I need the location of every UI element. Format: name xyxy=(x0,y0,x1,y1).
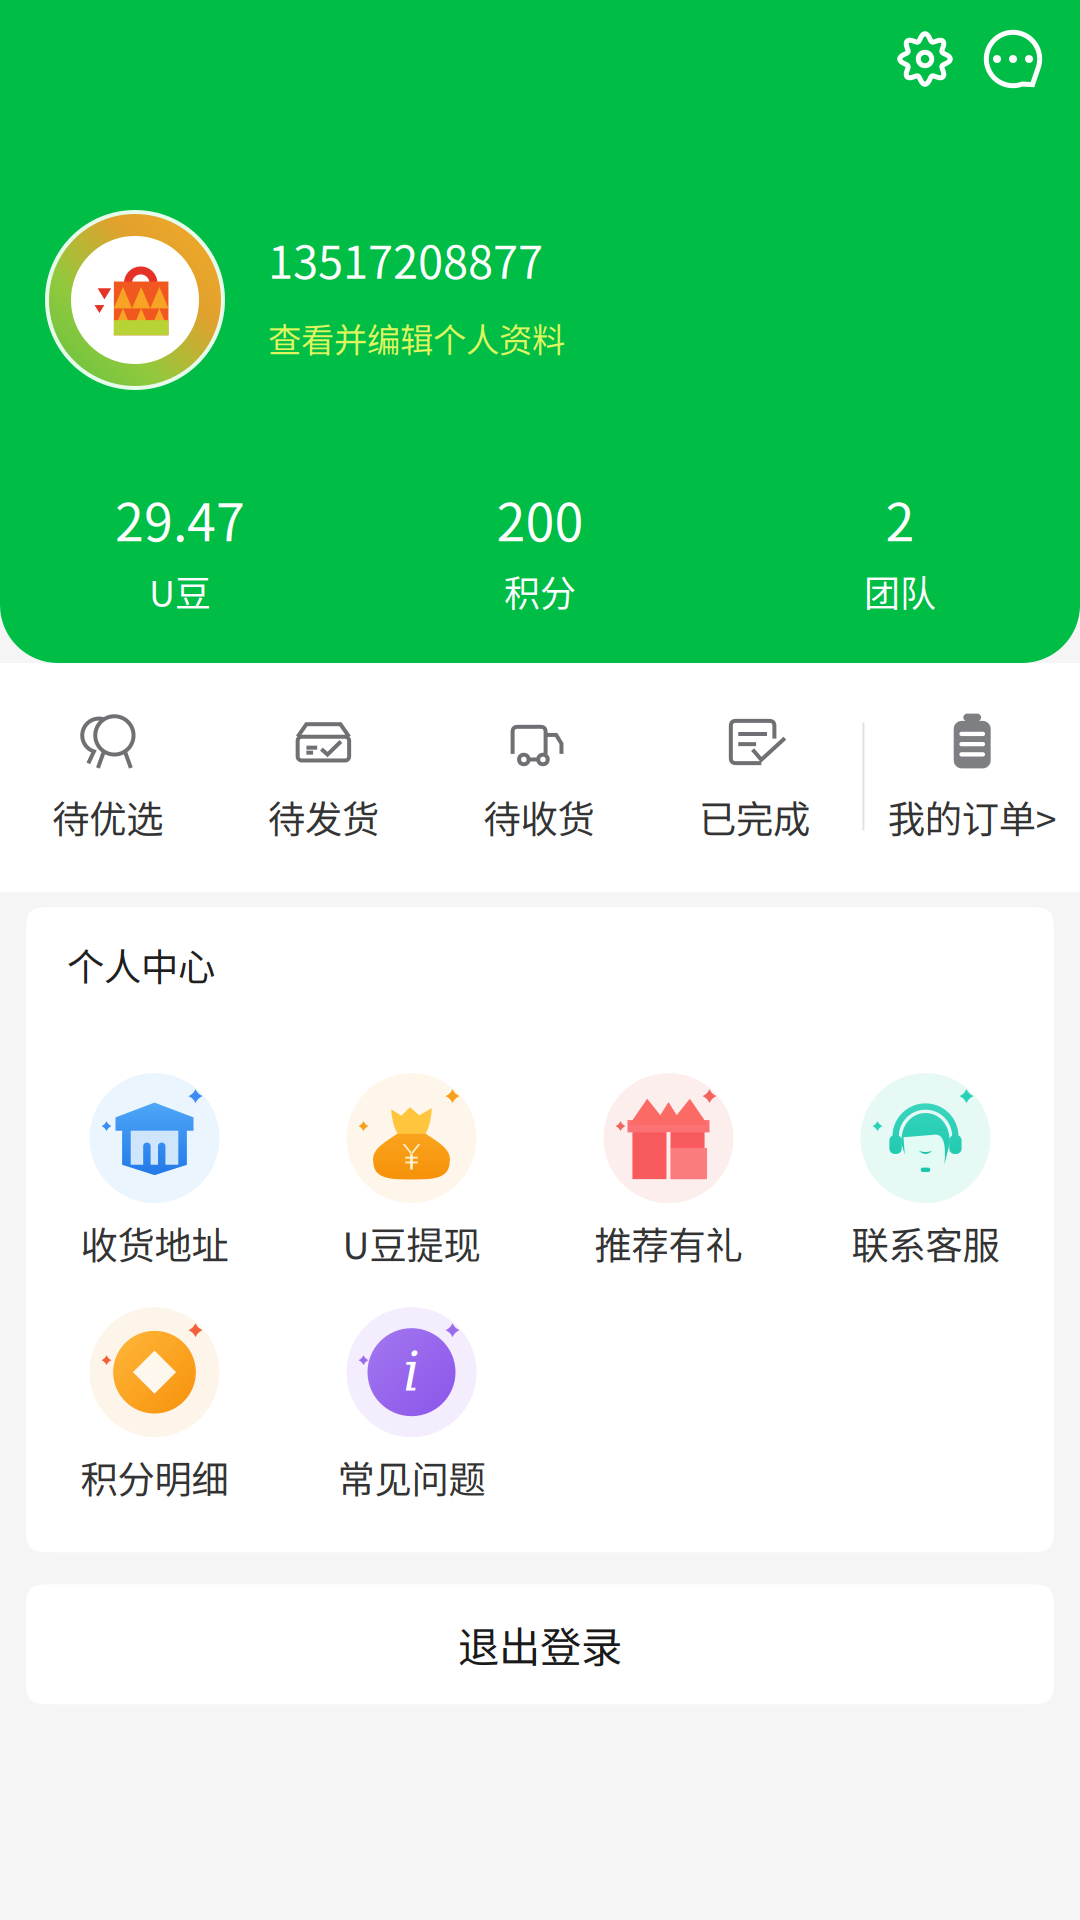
staticText: 收货地址 xyxy=(80,1216,228,1270)
staticText: 29.47 xyxy=(115,481,245,556)
staticText: 积分 xyxy=(504,565,576,617)
button[interactable]: 联系客服 xyxy=(797,1068,1054,1270)
staticText: U豆 xyxy=(149,565,211,617)
button[interactable]: 头像 xyxy=(43,208,227,392)
staticText: 联系客服 xyxy=(851,1216,999,1270)
staticText: i xyxy=(403,1341,420,1403)
button[interactable]: 我的订单> xyxy=(864,709,1080,844)
staticText: 查看并编辑个人资料 xyxy=(268,314,565,362)
staticText: 200 xyxy=(496,481,583,556)
button[interactable]: i xyxy=(283,1302,540,1504)
staticText: 待收货 xyxy=(483,790,594,844)
staticText: 积分明细 xyxy=(80,1450,228,1504)
staticText: 团队 xyxy=(864,565,936,617)
staticText: 个人中心 xyxy=(67,938,215,992)
staticText: 待优选 xyxy=(52,790,163,844)
staticText: U豆提现 xyxy=(342,1216,480,1270)
button[interactable]: 退出登录 xyxy=(26,1584,1054,1704)
staticText: 待发货 xyxy=(268,790,379,844)
button[interactable]: U豆提现 xyxy=(283,1068,540,1270)
button[interactable]: 29.47 xyxy=(0,481,360,617)
staticText: 2 xyxy=(885,481,914,556)
staticText: 我的订单> xyxy=(888,790,1057,844)
button[interactable]: 待收货 xyxy=(431,709,647,844)
button[interactable]: 推荐有礼 xyxy=(540,1068,797,1270)
button[interactable]: 更多 xyxy=(968,14,1058,104)
staticText: 已完成 xyxy=(699,790,810,844)
button[interactable]: 200 xyxy=(360,481,720,617)
staticText: 推荐有礼 xyxy=(594,1216,742,1270)
button[interactable]: 待优选 xyxy=(0,709,216,844)
button[interactable]: 收货地址 xyxy=(26,1068,283,1270)
staticText: 常见问题 xyxy=(337,1450,485,1504)
staticText: 13517208877 xyxy=(268,226,543,292)
button[interactable]: 2 xyxy=(720,481,1080,617)
button[interactable]: 积分明细 xyxy=(26,1302,283,1504)
staticText: 退出登录 xyxy=(458,1614,622,1674)
button[interactable]: 待发货 xyxy=(216,709,431,844)
button[interactable]: 已完成 xyxy=(647,709,862,844)
button[interactable]: 设置 xyxy=(882,16,968,102)
